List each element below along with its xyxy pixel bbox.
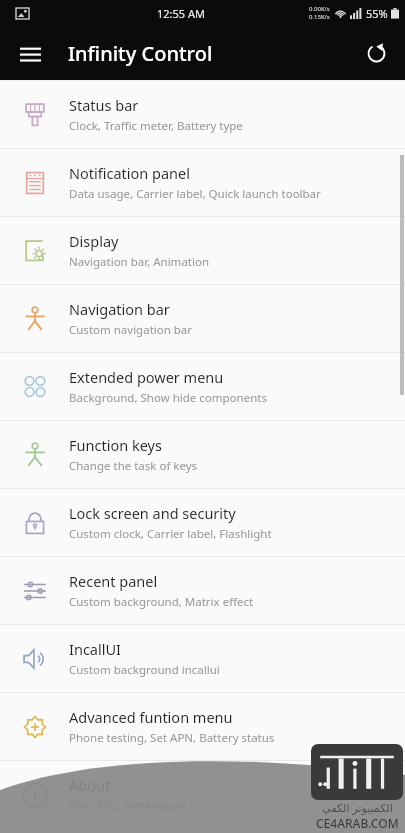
button[interactable]: Menu [10,33,50,73]
staticText: Custom background, Matrix effect [69,594,254,610]
staticText: Custom background incallui [69,662,220,678]
button[interactable]: Display [0,217,405,284]
staticText: Navigation bar, Animation [69,254,210,270]
staticText: 55% [366,6,388,21]
staticText: Display [69,231,119,251]
staticText: Recent panel [69,571,158,591]
staticText: Phone testing, Set APN, Battery status [69,730,275,746]
button[interactable]: Extended power menu [0,353,405,420]
staticText: Clock, Traffic meter, Battery type [69,118,243,134]
staticText: Infinity Control [68,40,213,67]
staticText: About [69,775,111,795]
staticText: Custom clock, Carrier label, Flashlight [69,526,272,542]
button[interactable]: Notification panel [0,149,405,216]
staticText: CE4ARAB.COM [316,815,399,831]
button[interactable]: Lock screen and security [0,489,405,556]
staticText: 0.00K/s [309,5,330,13]
staticText: Lock screen and security [69,503,236,523]
staticText: Status bar [69,95,139,115]
button[interactable]: About [0,761,405,828]
staticText: Advanced funtion menu [69,707,233,727]
button[interactable]: Refresh [355,32,397,74]
button[interactable]: Navigation bar [0,285,405,352]
button[interactable]: Recent panel [0,557,405,624]
button[interactable]: IncallUI [0,625,405,692]
staticText: Extended power menu [69,367,224,387]
staticText: Data usage, Carrier label, Quick launch … [69,186,321,202]
button[interactable]: Status bar [0,81,405,148]
staticText: Change the task of keys [69,458,198,474]
staticText: الكمبيوتر الكفي [322,800,393,815]
staticText: Background, Show hide components [69,390,267,406]
button[interactable]: Advanced funtion menu [0,693,405,760]
staticText: 0.15K/s [309,13,330,21]
button[interactable]: Function keys [0,421,405,488]
staticText: Notification panel [69,163,191,183]
staticText: 12:55 AM [157,6,205,21]
staticText: Custom navigation bar [69,322,193,338]
staticText: IncallUI [69,639,121,659]
staticText: Function keys [69,435,162,455]
staticText: Navigation bar [69,299,170,319]
